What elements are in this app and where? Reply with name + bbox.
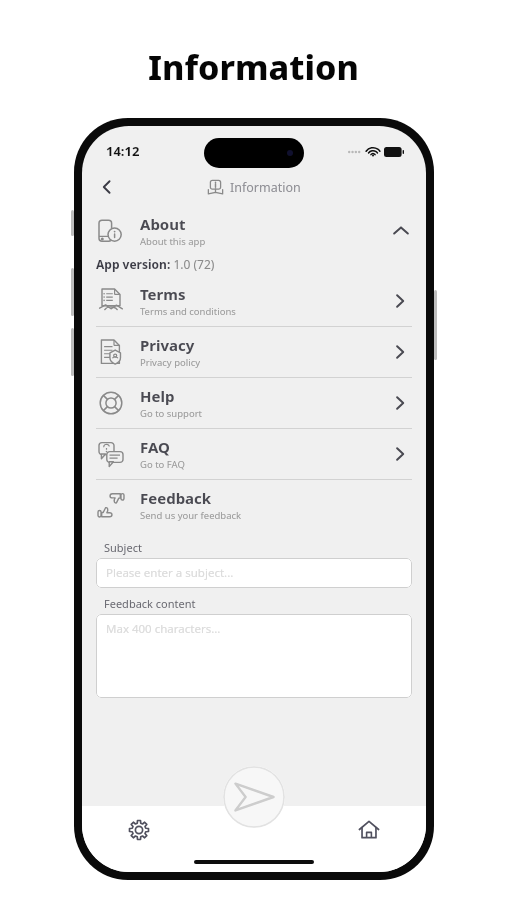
staticText: About bbox=[140, 214, 186, 234]
staticText: 14:12 bbox=[106, 142, 140, 160]
staticText: Max 400 characters... bbox=[106, 621, 221, 637]
button[interactable]: About bbox=[82, 208, 426, 254]
staticText: About this app bbox=[140, 235, 206, 248]
staticText: FAQ bbox=[140, 437, 170, 457]
staticText: Information bbox=[230, 179, 301, 196]
staticText: Send us your feedback bbox=[140, 509, 242, 522]
staticText: App version: 1.0 (72) bbox=[96, 256, 215, 272]
staticText: Feedback content bbox=[104, 596, 196, 611]
button[interactable]: FAQ bbox=[82, 429, 426, 479]
staticText: Help bbox=[140, 386, 175, 406]
button[interactable]: Send feedback bbox=[223, 766, 285, 828]
staticText: Feedback bbox=[140, 488, 212, 508]
staticText: Information bbox=[148, 44, 359, 90]
staticText: Go to FAQ bbox=[140, 458, 185, 471]
button[interactable]: Terms bbox=[82, 276, 426, 326]
staticText: Privacy policy bbox=[140, 356, 201, 369]
staticText: Subject bbox=[104, 540, 142, 555]
button[interactable]: Privacy bbox=[82, 327, 426, 377]
staticText: Terms and conditions bbox=[140, 305, 236, 318]
staticText: Go to support bbox=[140, 407, 202, 420]
button[interactable]: Settings bbox=[82, 806, 196, 854]
button[interactable]: Home bbox=[311, 806, 426, 854]
staticText: Please enter a subject... bbox=[106, 565, 234, 581]
button[interactable]: Help bbox=[82, 378, 426, 428]
staticText: Terms bbox=[140, 284, 186, 304]
button[interactable]: Max 400 characters... bbox=[96, 614, 412, 698]
button[interactable]: Feedback bbox=[82, 480, 426, 530]
button[interactable]: Back bbox=[92, 172, 122, 202]
staticText: Privacy bbox=[140, 335, 195, 355]
button[interactable]: Please enter a subject... bbox=[96, 558, 412, 588]
